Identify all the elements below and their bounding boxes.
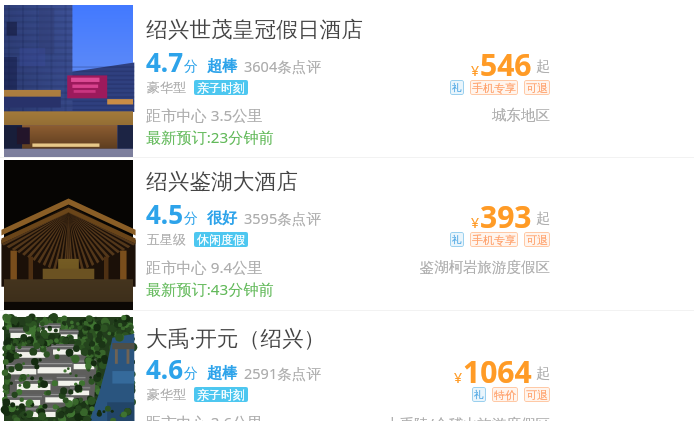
- staticText: 可退: [526, 233, 548, 247]
- staticText: 4.7: [146, 44, 184, 79]
- staticText: 1064: [463, 351, 532, 392]
- staticText: 最新预订:23分钟前: [146, 127, 274, 148]
- staticText: 分: [184, 365, 198, 383]
- staticText: 超棒: [207, 57, 237, 76]
- staticText: 3595条点评: [244, 208, 321, 228]
- staticText: 手机专享: [472, 233, 516, 247]
- staticText: ¥: [471, 61, 480, 80]
- staticText: 绍兴世茂皇冠假日酒店: [146, 16, 363, 43]
- staticText: 大禹陵/会稽山旅游度假区: [385, 413, 550, 421]
- staticText: 距市中心 9.4公里: [146, 257, 263, 278]
- button[interactable]: 绍兴世茂皇冠假日酒店: [0, 0, 694, 153]
- staticText: 最新预订:43分钟前: [146, 279, 274, 300]
- staticText: 546: [480, 44, 532, 85]
- staticText: 亲子时刻: [197, 387, 245, 402]
- staticText: 4.6: [146, 351, 184, 386]
- staticText: 休闲度假: [197, 232, 245, 247]
- staticText: 城东地区: [492, 106, 550, 124]
- staticText: 很好: [207, 209, 237, 228]
- staticText: 礼: [452, 81, 462, 94]
- staticText: 亲子时刻: [197, 80, 245, 95]
- button[interactable]: 大禹·开元（绍兴）: [0, 307, 694, 421]
- staticText: 分: [184, 210, 198, 228]
- staticText: 可退: [526, 81, 548, 95]
- staticText: 可退: [526, 388, 548, 402]
- staticText: 起: [536, 58, 550, 76]
- staticText: 礼: [474, 388, 484, 401]
- staticText: 礼: [452, 233, 462, 246]
- staticText: 2591条点评: [244, 363, 321, 383]
- staticText: 起: [536, 365, 550, 383]
- staticText: 3604条点评: [244, 56, 321, 76]
- staticText: 鉴湖柯岩旅游度假区: [419, 258, 550, 276]
- staticText: 大禹·开元（绍兴）: [146, 323, 326, 353]
- staticText: 393: [480, 196, 532, 237]
- staticText: 绍兴鉴湖大酒店: [146, 168, 298, 195]
- staticText: 手机专享: [472, 81, 516, 95]
- staticText: 豪华型: [147, 386, 186, 402]
- staticText: 五星级: [147, 231, 186, 247]
- button[interactable]: 绍兴鉴湖大酒店: [0, 152, 694, 305]
- staticText: 起: [536, 210, 550, 228]
- staticText: ¥: [471, 213, 480, 232]
- staticText: 分: [184, 58, 198, 76]
- staticText: 特价: [494, 388, 516, 402]
- staticText: 距市中心 3.5公里: [146, 105, 263, 126]
- staticText: 距市中心 2.6公里: [146, 412, 263, 421]
- staticText: ¥: [454, 368, 463, 387]
- staticText: 超棒: [207, 364, 237, 383]
- staticText: 4.5: [146, 196, 184, 231]
- staticText: 豪华型: [147, 79, 186, 95]
